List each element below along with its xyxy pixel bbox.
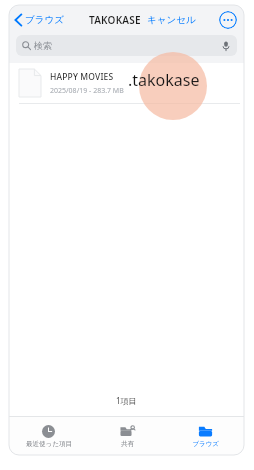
staticText: TAKOKASE xyxy=(89,13,141,27)
staticText: HAPPY MOVIES xyxy=(50,71,114,83)
staticText: .takokase xyxy=(128,69,200,91)
staticText: 検索 xyxy=(34,40,52,51)
button[interactable]: 最近使った項目 xyxy=(9,417,88,455)
staticText: 共有 xyxy=(121,440,134,448)
staticText: 1項目 xyxy=(116,395,137,406)
button[interactable]: ブラウズ xyxy=(9,9,68,31)
staticText: キャンセル xyxy=(147,14,196,26)
button[interactable]: 共有 xyxy=(88,417,166,455)
staticText: ブラウズ xyxy=(192,440,219,448)
button[interactable]: ブラウズ xyxy=(166,417,244,455)
button[interactable]: Voice search xyxy=(221,41,231,51)
button[interactable]: 検索 xyxy=(16,35,237,56)
button[interactable]: More options xyxy=(219,11,237,29)
staticText: 最近使った項目 xyxy=(26,440,72,448)
staticText: 2025/08/19 - 283.7 MB xyxy=(50,86,124,96)
button[interactable]: キャンセル xyxy=(146,10,197,30)
button[interactable]: HAPPY MOVIES xyxy=(9,63,244,103)
staticText: ブラウズ xyxy=(25,14,64,26)
